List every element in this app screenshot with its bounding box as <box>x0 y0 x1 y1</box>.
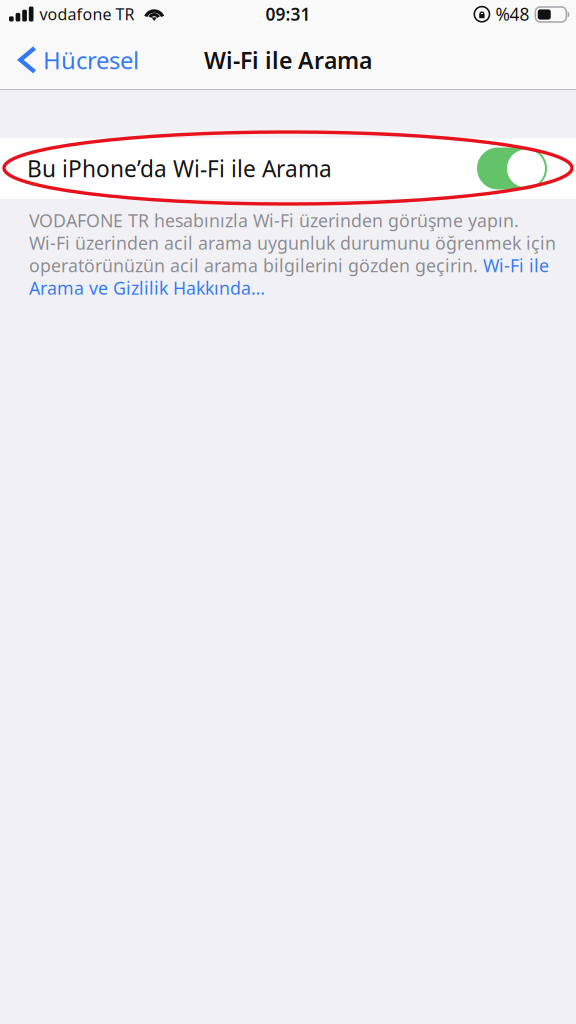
staticText: %48 <box>495 2 529 25</box>
button[interactable]: Arama ve Gizlilik Hakkında… <box>29 276 265 299</box>
staticText: Bu iPhone’da Wi-Fi ile Arama <box>27 153 332 183</box>
staticText: Wi-Fi ile Arama <box>204 45 372 75</box>
staticText: Wi-Fi ile <box>478 253 549 277</box>
staticText: Arama ve Gizlilik Hakkında… <box>29 276 265 299</box>
staticText: Hücresel <box>43 44 139 76</box>
staticText: vodafone TR <box>39 3 134 25</box>
button[interactable]: Bu iPhone’da Wi-Fi ile Arama <box>0 138 576 199</box>
staticText: Wi-Fi üzerinden acil arama uygunluk duru… <box>29 231 556 254</box>
staticText: operatörünüzün acil arama bilgilerini gö… <box>29 253 478 277</box>
staticText: 09:31 <box>265 2 310 25</box>
staticText: VODAFONE TR hesabınızla Wi-Fi üzerinden … <box>29 208 519 232</box>
button[interactable]: Wi-Fi ile <box>478 253 549 277</box>
button[interactable]: Hücresel <box>0 31 149 89</box>
